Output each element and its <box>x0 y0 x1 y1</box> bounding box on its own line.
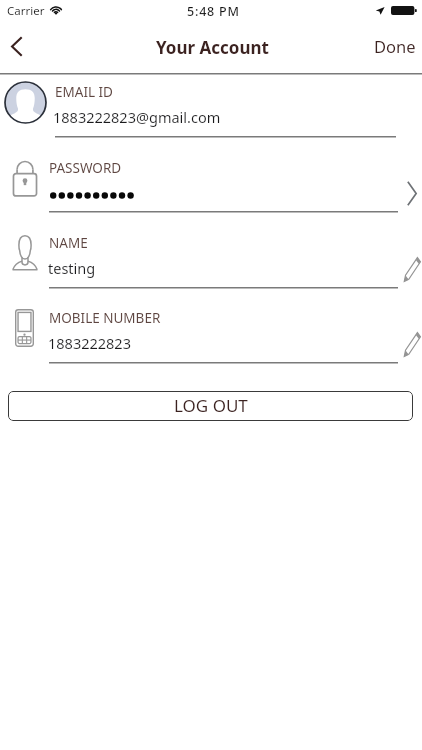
button[interactable]: Edit mobile number <box>392 321 422 367</box>
staticText: PASSWORD <box>49 159 122 177</box>
staticText: LOG OUT <box>174 394 248 417</box>
button[interactable]: MOBILE NUMBER <box>0 288 422 363</box>
staticText: MOBILE NUMBER <box>49 309 161 327</box>
staticText: 1883222823@gmail.com <box>53 107 221 127</box>
staticText: Done <box>374 35 416 57</box>
staticText: Carrier <box>7 3 45 19</box>
button[interactable]: Done <box>366 26 422 72</box>
button[interactable]: Back <box>0 24 34 68</box>
staticText: NAME <box>49 234 88 252</box>
button[interactable]: EMAIL ID <box>0 74 422 137</box>
button[interactable]: LOG OUT <box>8 391 413 421</box>
button[interactable]: PASSWORD <box>0 137 422 212</box>
staticText: 5:48 PM <box>187 3 240 20</box>
staticText: testing <box>48 258 96 278</box>
staticText: 1883222823 <box>48 333 131 353</box>
button[interactable]: Change password <box>392 170 422 216</box>
staticText: EMAIL ID <box>55 83 113 101</box>
staticText: Your Account <box>156 36 269 59</box>
button[interactable]: Edit name <box>392 246 422 292</box>
button[interactable]: NAME <box>0 212 422 287</box>
